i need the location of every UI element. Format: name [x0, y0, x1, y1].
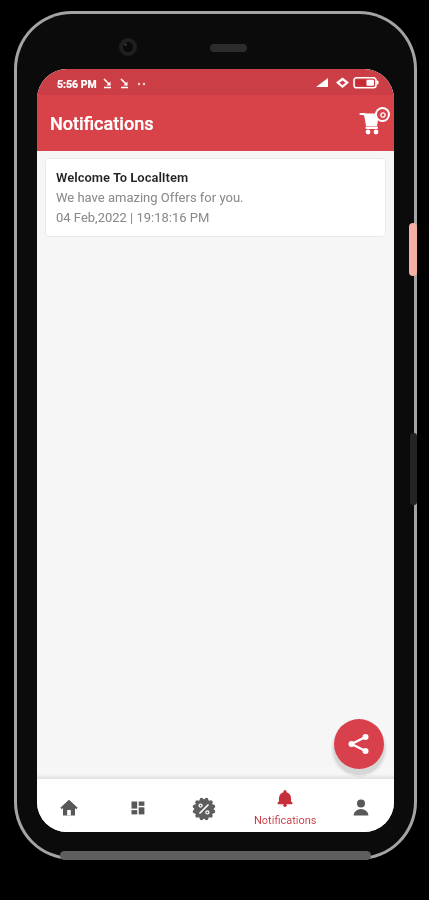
staticText: We have amazing Offers for you. — [56, 190, 244, 205]
button[interactable]: Welcome To LocalItem — [45, 158, 386, 237]
button[interactable] — [355, 105, 391, 145]
button[interactable] — [341, 790, 381, 830]
staticText: 04 Feb,2022 | 19:18:16 PM — [56, 210, 210, 225]
button[interactable] — [51, 790, 91, 830]
button[interactable] — [184, 790, 224, 830]
staticText: 5:56 PM — [57, 78, 97, 90]
button[interactable] — [119, 790, 159, 830]
staticText: Notifications — [50, 113, 154, 134]
staticText: Notifications — [254, 814, 317, 827]
staticText: Welcome To LocalItem — [56, 170, 189, 185]
button[interactable]: Notifications — [250, 780, 320, 832]
button[interactable] — [334, 719, 384, 769]
